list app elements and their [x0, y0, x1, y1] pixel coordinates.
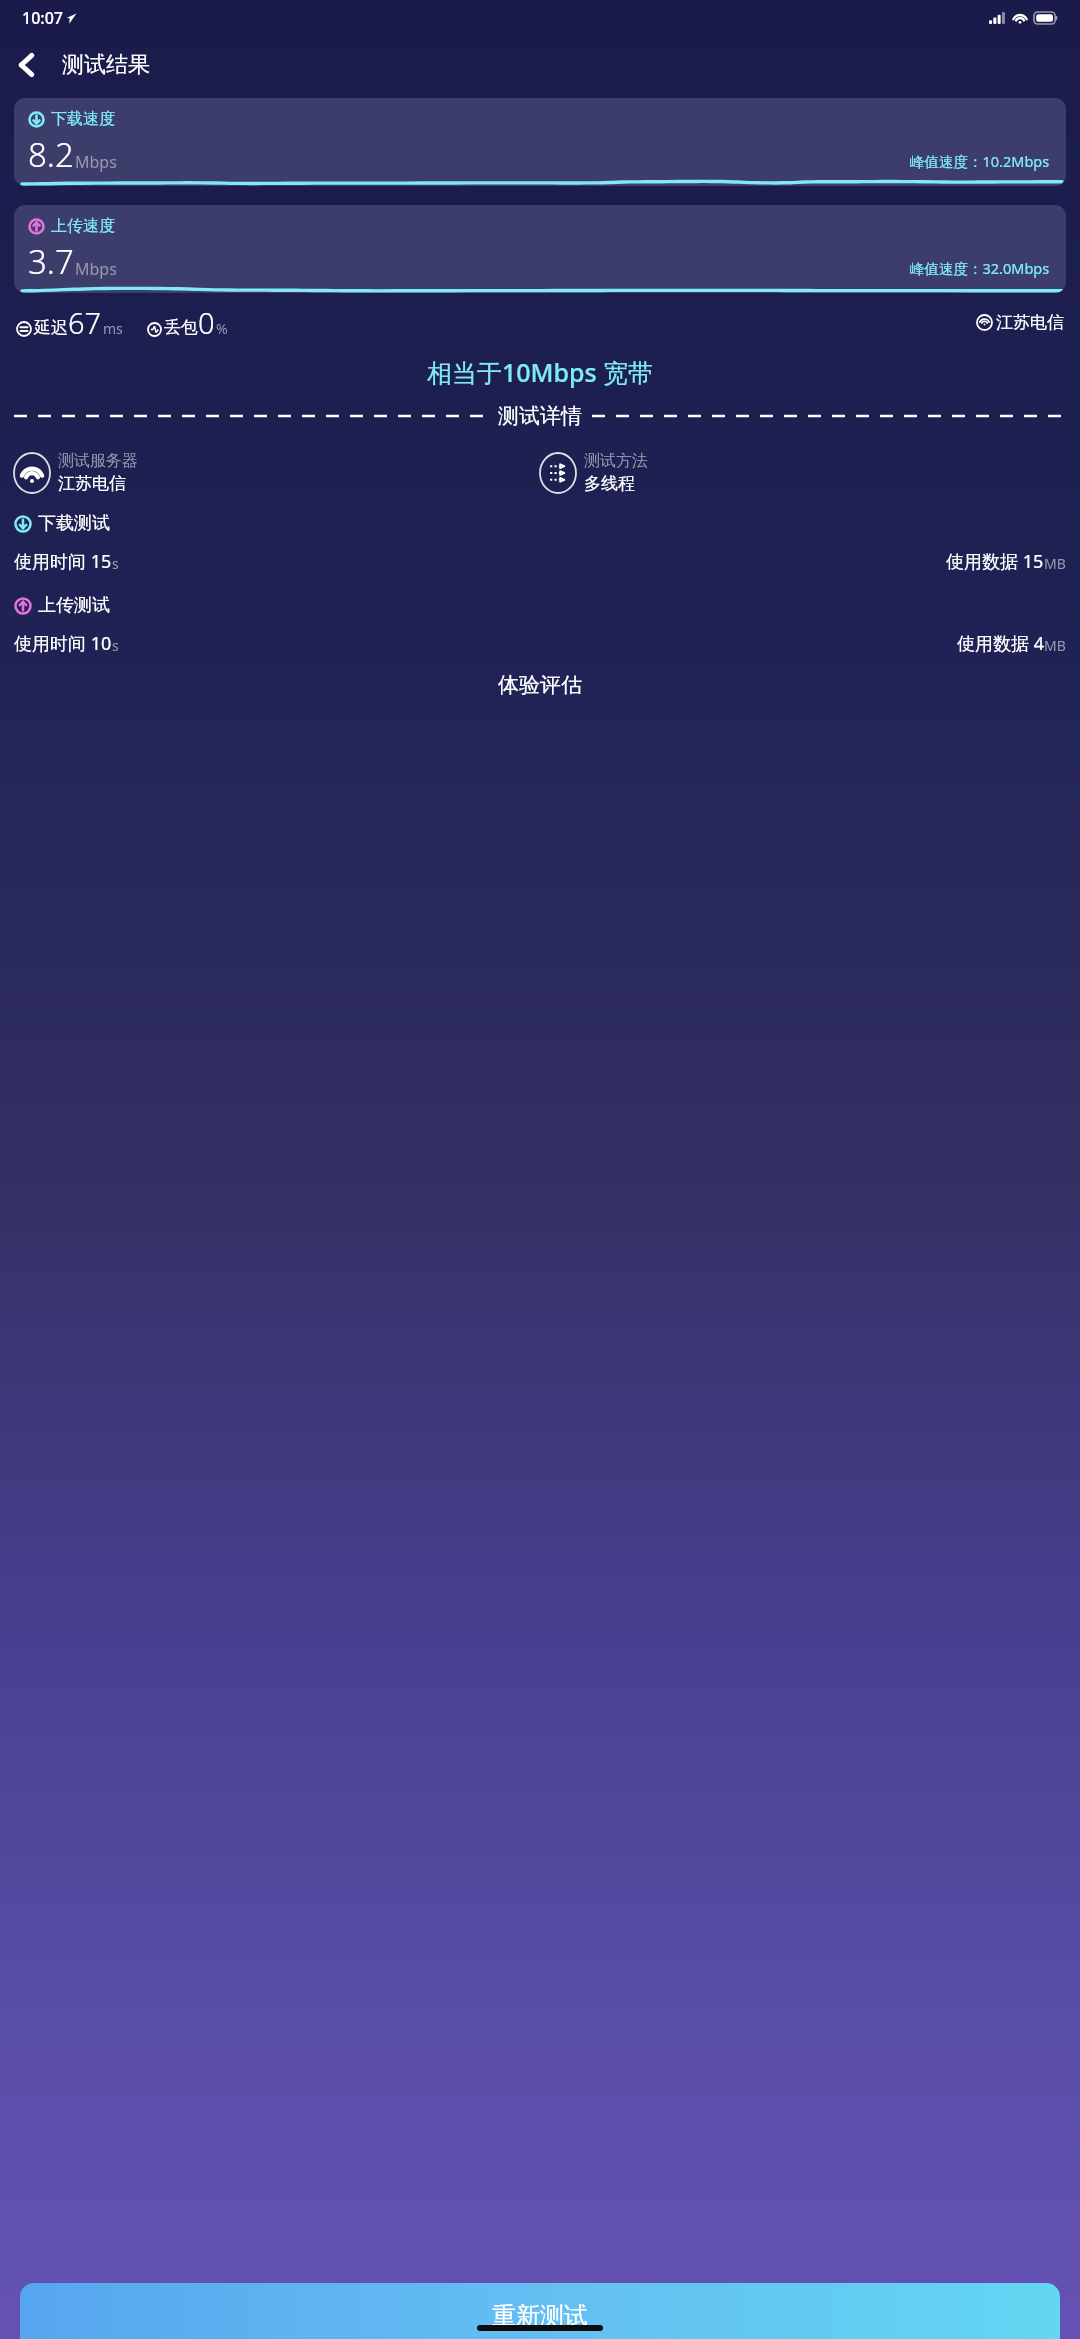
staticText: Mbps — [75, 258, 117, 280]
staticText: 下载测试 — [38, 512, 110, 535]
staticText: MB — [1044, 636, 1066, 655]
staticText: 相当于10Mbps 宽带 — [0, 355, 1080, 389]
staticText: 峰值速度：10.2Mbps — [910, 151, 1050, 171]
button[interactable]: 测试服务器 — [14, 451, 540, 494]
staticText: 使用数据 4 — [957, 631, 1044, 656]
button[interactable]: 江苏电信 — [976, 312, 1064, 333]
staticText: 江苏电信 — [58, 473, 126, 494]
staticText: 多线程 — [584, 473, 635, 494]
staticText: 使用数据 15 — [946, 549, 1044, 574]
staticText: 峰值速度：32.0Mbps — [910, 258, 1050, 278]
staticText: 延迟 — [34, 317, 68, 338]
staticText: s — [112, 636, 119, 655]
staticText: 上传测试 — [38, 594, 110, 617]
button[interactable]: 重新测试 — [20, 2283, 1060, 2339]
button[interactable]: 测试方法 — [540, 451, 1066, 494]
staticText: 重新测试 — [492, 2301, 588, 2331]
staticText: 测试结果 — [62, 51, 150, 79]
staticText: 8.2 — [28, 132, 74, 177]
button[interactable]: 上传速度 — [14, 205, 1066, 293]
staticText: MB — [1044, 554, 1066, 573]
staticText: 0 — [198, 303, 215, 341]
staticText: 3.7 — [28, 239, 74, 284]
staticText: 使用时间 15 — [14, 549, 112, 574]
staticText: 体验评估 — [0, 672, 1080, 698]
staticText: 上传速度 — [51, 216, 115, 236]
staticText: s — [112, 554, 119, 573]
staticText: Mbps — [75, 151, 117, 173]
button[interactable]: 下载速度 — [14, 98, 1066, 186]
staticText: ms — [103, 319, 123, 338]
button[interactable]: 丢包 — [147, 303, 228, 341]
button[interactable]: 延迟 — [16, 303, 123, 341]
staticText: 测试服务器 — [58, 451, 138, 471]
staticText: 10:07 — [22, 7, 63, 29]
staticText: 测试方法 — [584, 451, 648, 471]
staticText: 测试详情 — [498, 403, 582, 429]
button[interactable]: Back — [0, 38, 54, 92]
staticText: 使用时间 10 — [14, 631, 112, 656]
staticText: 下载速度 — [51, 109, 115, 129]
staticText: 67 — [68, 303, 102, 341]
staticText: 江苏电信 — [996, 312, 1064, 333]
staticText: % — [216, 319, 228, 338]
staticText: 丢包 — [164, 317, 198, 338]
